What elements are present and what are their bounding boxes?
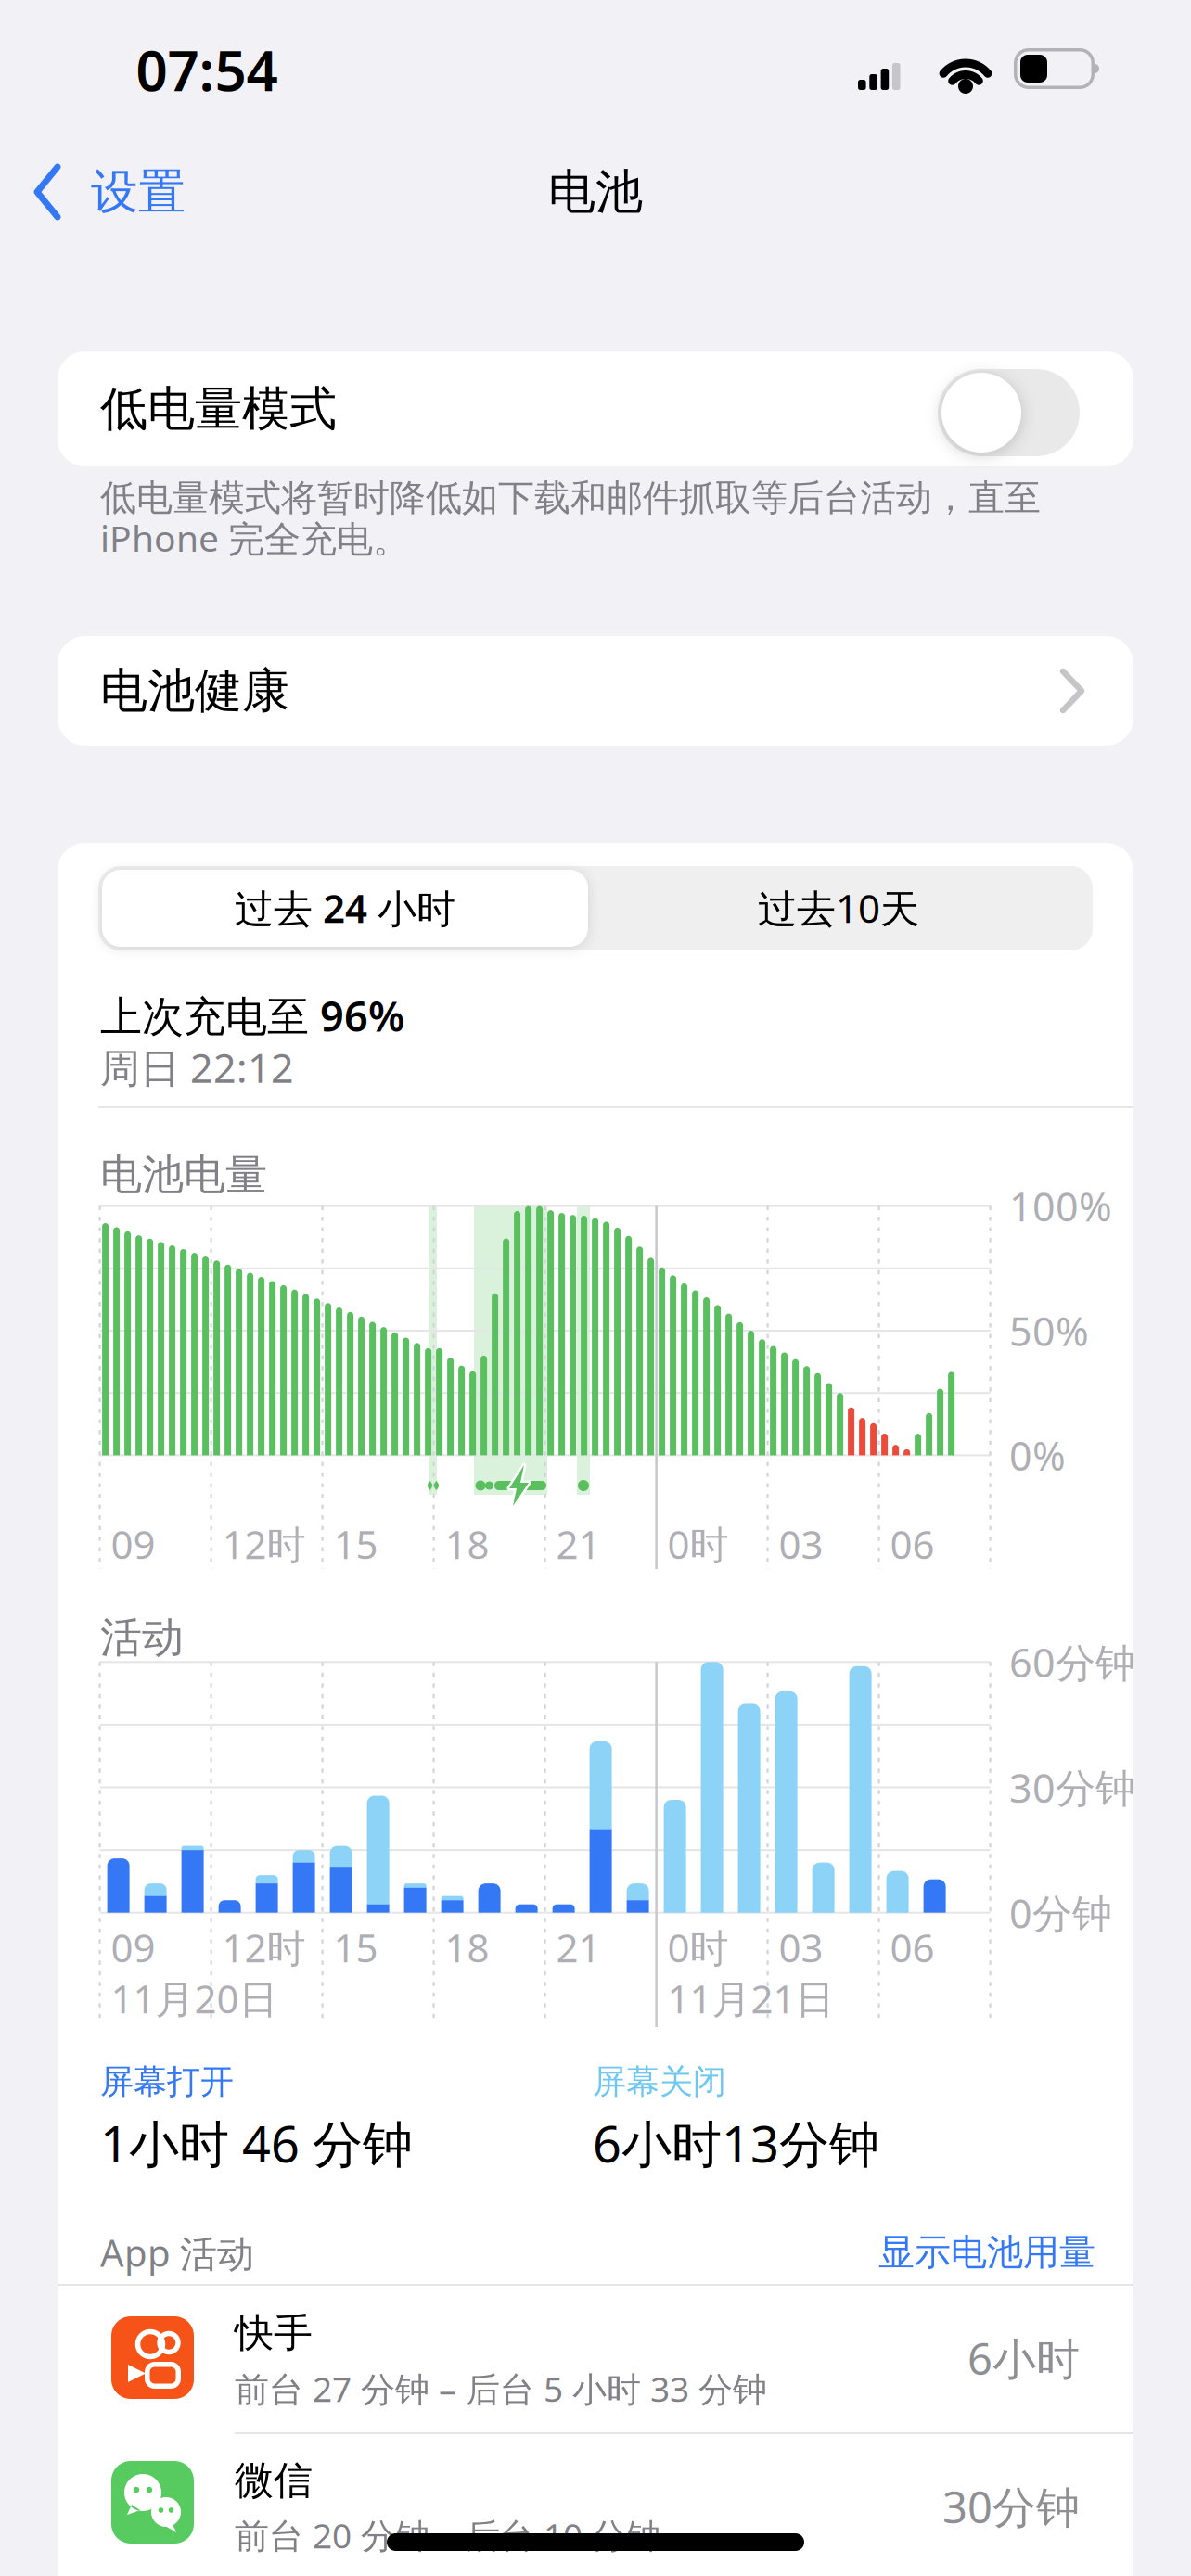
staticText: 电池健康 bbox=[100, 662, 289, 720]
button[interactable]: 微信 bbox=[58, 2434, 1133, 2576]
staticText: 07:54 bbox=[136, 33, 278, 107]
staticText: 6小时13分钟 bbox=[593, 2110, 879, 2176]
staticText: 09 bbox=[111, 1921, 155, 1973]
staticText: 显示电池用量 bbox=[878, 2230, 1095, 2275]
staticText: 18 bbox=[445, 1518, 489, 1570]
staticText: 0% bbox=[1009, 1429, 1066, 1482]
staticText: 60分钟 bbox=[1009, 1635, 1135, 1688]
button[interactable] bbox=[938, 369, 1080, 456]
staticText: 上次充电至 96% bbox=[100, 988, 404, 1043]
staticText: 过去10天 bbox=[758, 882, 919, 934]
staticText: 屏幕打开 bbox=[100, 2061, 234, 2102]
staticText: 前台 20 分钟 – 后台 10 分钟 bbox=[235, 2512, 660, 2558]
staticText: 50% bbox=[1009, 1304, 1089, 1357]
staticText: 21 bbox=[556, 1518, 601, 1570]
staticText: 设置 bbox=[91, 163, 186, 221]
staticText: iPhone 完全充电。 bbox=[100, 514, 409, 562]
staticText: 0分钟 bbox=[1009, 1886, 1112, 1939]
staticText: 0时 bbox=[667, 1518, 729, 1570]
staticText: 15 bbox=[334, 1518, 378, 1570]
staticText: 15 bbox=[334, 1921, 378, 1973]
staticText: 1小时 46 分钟 bbox=[100, 2110, 413, 2176]
staticText: 电池 bbox=[548, 163, 643, 221]
staticText: 电池电量 bbox=[100, 1149, 267, 1201]
staticText: 周日 22:12 bbox=[100, 1041, 294, 1094]
staticText: 09 bbox=[111, 1518, 155, 1570]
button[interactable] bbox=[592, 866, 1093, 950]
staticText: 12时 bbox=[222, 1921, 306, 1973]
staticText: 6小时 bbox=[967, 2329, 1080, 2387]
button[interactable]: 设置 bbox=[22, 146, 282, 238]
staticText: 微信 bbox=[235, 2457, 313, 2504]
staticText: App 活动 bbox=[100, 2228, 254, 2277]
staticText: 屏幕关闭 bbox=[593, 2061, 726, 2102]
button[interactable]: 显示电池用量 bbox=[0, 0, 649, 83]
staticText: 03 bbox=[779, 1921, 823, 1973]
button[interactable]: 快手 bbox=[58, 2284, 1133, 2432]
staticText: 18 bbox=[445, 1921, 489, 1973]
staticText: 03 bbox=[779, 1518, 823, 1570]
staticText: 30分钟 bbox=[1009, 1761, 1135, 1814]
staticText: 11月21日 bbox=[667, 1972, 834, 2024]
staticText: 12时 bbox=[222, 1518, 306, 1570]
staticText: 100% bbox=[1009, 1180, 1112, 1232]
staticText: 快手 bbox=[235, 2309, 313, 2357]
staticText: 低电量模式将暂时降低如下载和邮件抓取等后台活动，直至 bbox=[100, 476, 1041, 520]
button[interactable]: 电池健康 bbox=[58, 636, 1133, 746]
staticText: 06 bbox=[890, 1518, 935, 1570]
staticText: 前台 27 分钟 – 后台 5 小时 33 分钟 bbox=[235, 2366, 767, 2411]
staticText: 过去 24 小时 bbox=[235, 882, 455, 934]
staticText: 活动 bbox=[100, 1612, 184, 1663]
staticText: 30分钟 bbox=[942, 2478, 1080, 2535]
staticText: 11月20日 bbox=[111, 1972, 278, 2024]
staticText: 0时 bbox=[667, 1921, 729, 1973]
button[interactable] bbox=[102, 870, 588, 947]
staticText: 21 bbox=[556, 1921, 601, 1973]
staticText: 低电量模式 bbox=[100, 380, 337, 438]
staticText: 06 bbox=[890, 1921, 935, 1973]
